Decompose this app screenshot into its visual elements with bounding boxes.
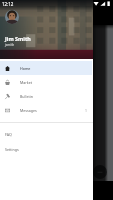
other: Home bbox=[5, 66, 10, 71]
button[interactable]: Home bbox=[0, 61, 93, 75]
staticText: jsmith bbox=[5, 43, 15, 47]
other: Messages bbox=[5, 108, 10, 113]
staticText: Jim Smith bbox=[5, 35, 31, 42]
other: Market bbox=[5, 80, 10, 85]
staticText: Messages bbox=[20, 108, 37, 113]
staticText: 12:12 bbox=[2, 1, 14, 7]
staticText: FAQ bbox=[5, 132, 12, 137]
staticText: Market bbox=[20, 80, 33, 85]
staticText: Bulletin bbox=[20, 94, 33, 99]
button[interactable]: FAQ bbox=[0, 127, 93, 141]
button[interactable]: Messages bbox=[0, 103, 93, 117]
staticText: Home bbox=[20, 66, 31, 71]
staticText: Settings bbox=[5, 147, 19, 152]
button[interactable]: Settings bbox=[0, 142, 93, 156]
button[interactable]: Compose bbox=[93, 165, 107, 179]
button[interactable]: Market bbox=[0, 75, 93, 89]
button[interactable]: Bulletin bbox=[0, 89, 93, 103]
other: Bulletin bbox=[5, 94, 10, 99]
staticText: 1 bbox=[85, 108, 87, 113]
